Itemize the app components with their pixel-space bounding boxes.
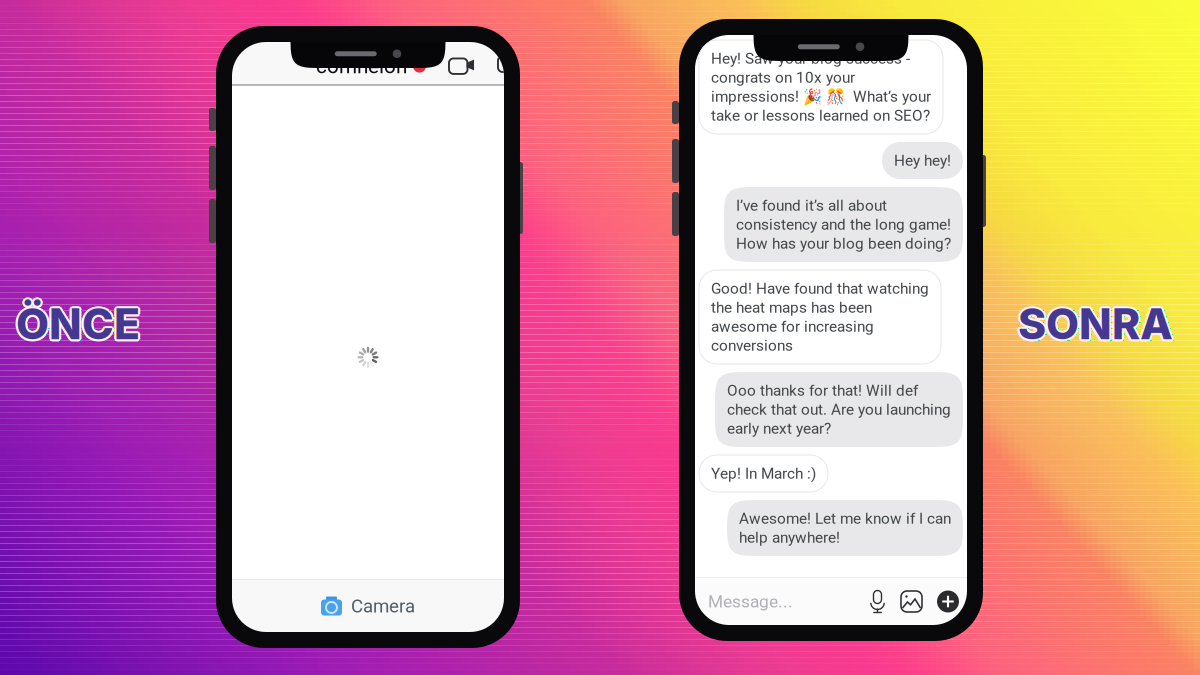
staticText: help anywhere!: [739, 528, 840, 546]
staticText: Ooo thanks for that! Will def: [727, 381, 918, 399]
staticText: ÖNCE: [14, 296, 138, 348]
staticText: ÖNCE: [18, 298, 142, 350]
staticText: Camera: [351, 595, 415, 617]
staticText: SONRA: [1018, 300, 1173, 352]
staticText: SONRA: [1018, 296, 1173, 347]
staticText: take or lessons learned on SEO?: [711, 106, 930, 124]
staticText: Hey hey!: [894, 151, 951, 169]
staticText: early next year?: [727, 419, 831, 437]
staticText: Good! Have found that watching: [711, 279, 929, 297]
staticText: SONRA: [1016, 298, 1171, 350]
button[interactable]: Camera: [232, 580, 504, 632]
staticText: SONRA: [1016, 300, 1171, 351]
staticText: impressions! 🎉 🎊 What’s your: [711, 87, 931, 105]
staticText: ÖNCE: [14, 300, 138, 351]
staticText: conversions: [711, 336, 793, 354]
staticText: Message...: [708, 591, 793, 612]
staticText: ÖNCE: [14, 298, 138, 350]
staticText: How has your blog been doing?: [736, 234, 951, 252]
button[interactable]: Send a photo: [886, 591, 922, 612]
staticText: ÖNCE: [16, 296, 140, 347]
staticText: consistency and the long game!: [736, 215, 951, 233]
staticText: ÖNCE: [16, 298, 140, 350]
staticText: SONRA: [1020, 300, 1175, 351]
staticText: SONRA: [1016, 296, 1171, 348]
button[interactable]: Record voice message: [869, 590, 886, 613]
staticText: ÖNCE: [16, 300, 140, 352]
staticText: Yep! In March :): [711, 464, 816, 482]
staticText: SONRA: [1020, 298, 1175, 350]
button[interactable]: New message: [492, 50, 521, 78]
button[interactable]: Video call: [443, 50, 481, 80]
staticText: I’ve found it’s all about: [736, 196, 887, 214]
staticText: SONRA: [1020, 296, 1175, 348]
staticText: ÖNCE: [18, 296, 142, 348]
staticText: comhelon: [316, 54, 407, 78]
staticText: Hey! Saw your blog success -: [711, 49, 910, 67]
staticText: the heat maps has been: [711, 298, 872, 316]
staticText: check that out. Are you launching: [727, 400, 951, 418]
staticText: Awesome! Let me know if I can: [739, 509, 951, 527]
button[interactable]: More options: [922, 590, 959, 612]
staticText: ÖNCE: [18, 300, 142, 351]
staticText: congrats on 10x your: [711, 68, 855, 86]
staticText: awesome for increasing: [711, 317, 874, 335]
staticText: SONRA: [1018, 298, 1173, 350]
